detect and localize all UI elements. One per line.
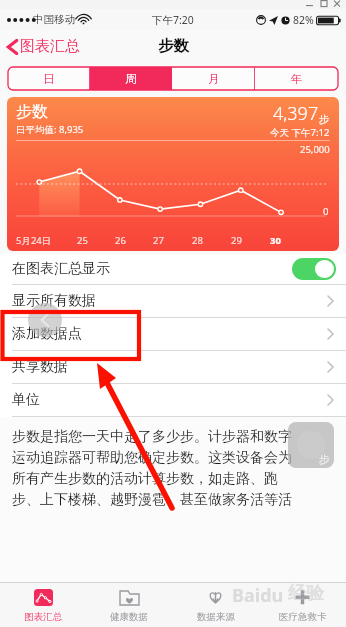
- staticText: 数据来源: [197, 611, 235, 623]
- staticText: 步: [319, 113, 330, 126]
- staticText: 26: [115, 234, 126, 247]
- button[interactable]: 显示所有数据: [0, 285, 346, 317]
- staticText: 27: [153, 234, 164, 247]
- staticText: 健康数据: [110, 611, 148, 623]
- staticText: 82%: [293, 13, 314, 27]
- button[interactable]: 日: [8, 67, 90, 90]
- staticText: 显示所有数据: [12, 292, 96, 310]
- staticText: 步数: [16, 102, 48, 122]
- staticText: 25,000: [300, 143, 330, 156]
- staticText: 步: [319, 452, 330, 466]
- other: Back: [28, 303, 62, 337]
- staticText: 日平均值: 8,935: [16, 123, 84, 136]
- staticText: 所有产生步数的活动计算步数，如走路、跑: [12, 470, 278, 488]
- button[interactable]: 图表汇总: [0, 583, 86, 627]
- staticText: 步数: [158, 36, 189, 56]
- staticText: 单位: [12, 391, 40, 409]
- staticText: 30: [270, 234, 281, 247]
- staticText: 29: [231, 234, 242, 247]
- staticText: 5月24日: [16, 234, 52, 247]
- button[interactable]: 共享数据: [0, 351, 346, 383]
- staticText: 运动追踪器可帮助您确定步数。这类设备会为: [12, 449, 292, 467]
- staticText: 月: [208, 72, 220, 86]
- button[interactable]: 单位: [0, 384, 346, 416]
- staticText: 周: [125, 72, 137, 86]
- staticText: 日: [43, 72, 55, 86]
- button[interactable]: 健康数据: [86, 583, 172, 627]
- button[interactable]: 月: [172, 67, 255, 90]
- staticText: 图表汇总: [24, 611, 62, 623]
- staticText: 今天 下午7:12: [270, 126, 330, 139]
- staticText: 共享数据: [12, 358, 68, 376]
- staticText: 医疗急救卡: [279, 611, 327, 623]
- staticText: 步数是指您一天中走了多少步。计步器和数字: [12, 428, 292, 446]
- staticText: 经验: [288, 582, 324, 605]
- staticText: Baidu: [232, 583, 284, 608]
- staticText: 步、上下楼梯、越野漫雹、甚至做家务活等活: [12, 491, 292, 509]
- staticText: 下午7:20: [152, 13, 194, 27]
- staticText: 28: [192, 234, 203, 247]
- button[interactable]: 周: [90, 67, 172, 90]
- staticText: 0: [323, 205, 329, 218]
- button[interactable]: 数据来源: [172, 583, 259, 627]
- button[interactable]: 年: [255, 67, 338, 90]
- staticText: 图表汇总: [20, 37, 80, 56]
- button[interactable]: 步数: [7, 97, 339, 251]
- staticText: 4,397: [273, 101, 319, 126]
- staticText: 年: [291, 72, 303, 86]
- staticText: 25: [77, 234, 88, 247]
- button[interactable]: 在图表汇总显示: [0, 254, 346, 284]
- staticText: 在图表汇总显示: [12, 260, 110, 278]
- staticText: 中国移动: [33, 13, 75, 26]
- button[interactable]: 医疗急救卡: [259, 583, 346, 627]
- button[interactable]: 添加数据点: [0, 318, 346, 350]
- button[interactable]: 图表汇总: [0, 33, 88, 60]
- staticText: 添加数据点: [12, 325, 82, 343]
